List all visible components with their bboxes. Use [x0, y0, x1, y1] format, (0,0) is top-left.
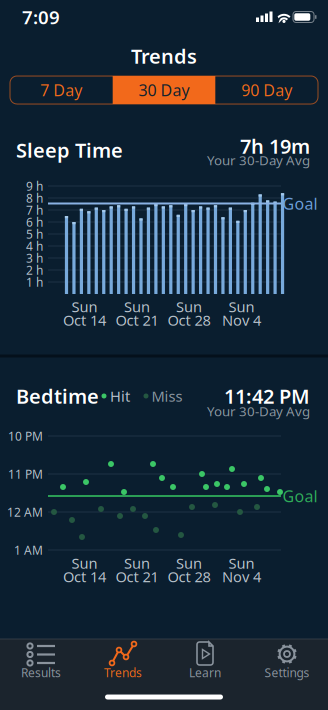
staticText: Miss: [151, 386, 182, 406]
button[interactable]: 30 Day: [113, 76, 215, 104]
staticText: 5 h: [26, 226, 43, 242]
staticText: Goal: [282, 193, 317, 214]
button[interactable]: Settings: [247, 636, 327, 684]
staticText: 30 Day: [138, 79, 189, 101]
staticText: 6 h: [26, 214, 43, 230]
staticText: Sun: [176, 297, 202, 316]
staticText: 9 h: [26, 178, 43, 194]
button[interactable]: Trends: [83, 636, 163, 684]
staticText: Results: [21, 664, 61, 680]
button[interactable]: Results: [1, 636, 81, 684]
staticText: Sun: [71, 553, 97, 573]
staticText: Oct 28: [167, 310, 210, 330]
staticText: Sun: [176, 553, 202, 573]
staticText: 1 AM: [14, 542, 43, 558]
staticText: 1 h: [26, 274, 43, 290]
staticText: Trends: [131, 43, 197, 69]
staticText: 12 AM: [7, 504, 43, 520]
button[interactable]: 90 Day: [216, 76, 318, 104]
staticText: 10 PM: [8, 428, 43, 444]
staticText: 90 Day: [241, 79, 292, 101]
staticText: 8 h: [26, 190, 43, 206]
staticText: Hit: [110, 386, 130, 406]
staticText: Nov 4: [222, 567, 261, 586]
staticText: Trends: [104, 664, 142, 680]
staticText: Sleep Time: [16, 137, 123, 163]
staticText: Nov 4: [222, 310, 261, 330]
staticText: 7 h: [26, 202, 43, 218]
staticText: 7h 19m: [240, 133, 310, 159]
staticText: Sun: [228, 297, 254, 316]
staticText: 4 h: [26, 238, 43, 254]
staticText: Bedtime: [16, 383, 99, 409]
staticText: Sun: [124, 297, 150, 316]
staticText: Oct 28: [167, 567, 210, 586]
staticText: 2 h: [26, 262, 43, 278]
staticText: Learn: [189, 664, 221, 680]
staticText: 3 h: [26, 250, 43, 266]
staticText: Your 30-Day Avg: [207, 402, 310, 420]
staticText: Your 30-Day Avg: [207, 151, 310, 169]
staticText: Oct 14: [63, 567, 106, 586]
staticText: Settings: [264, 664, 309, 680]
staticText: 11:42 PM: [224, 383, 310, 409]
staticText: Oct 21: [115, 310, 158, 330]
staticText: Sun: [124, 553, 150, 573]
staticText: 11 PM: [8, 466, 43, 482]
staticText: Oct 14: [63, 310, 106, 330]
staticText: Goal: [282, 485, 317, 507]
staticText: Oct 21: [115, 567, 158, 586]
staticText: 7:09: [22, 5, 60, 29]
button[interactable]: Learn: [165, 636, 245, 684]
button[interactable]: 7 Day: [10, 76, 112, 104]
staticText: 7 Day: [40, 79, 82, 101]
staticText: Sun: [228, 553, 254, 573]
staticText: Sun: [71, 297, 97, 316]
